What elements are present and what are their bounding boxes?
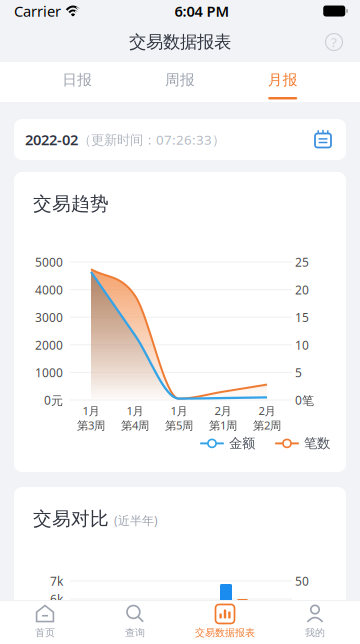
staticText: 2月	[214, 403, 231, 418]
staticText: 0笔	[295, 392, 314, 408]
staticText: 6:04 PM	[174, 1, 229, 21]
staticText: 4k	[50, 627, 63, 643]
staticText: 2022-02	[25, 129, 78, 149]
staticText: 月报	[268, 70, 298, 89]
button[interactable]: 月报	[231, 62, 334, 102]
staticText: （更新时间：07:26:33）	[78, 130, 225, 149]
staticText: 5	[295, 364, 302, 381]
staticText: 交易数据报表	[129, 31, 231, 53]
staticText: 5000	[35, 254, 63, 270]
staticText: 我的	[305, 626, 325, 639]
button[interactable]: 周报	[129, 62, 231, 102]
button[interactable]: 查询	[90, 600, 180, 644]
staticText: 第3周	[77, 417, 105, 433]
staticText: 首页	[35, 626, 55, 639]
staticText: 2000	[35, 337, 63, 353]
staticText: 30	[295, 623, 309, 640]
staticText: 40	[295, 598, 309, 614]
staticText: 15	[295, 309, 309, 325]
staticText: ?	[331, 33, 337, 51]
button[interactable]: 首页	[0, 600, 90, 644]
staticText: 1月	[126, 403, 143, 418]
button[interactable]: 2022-02	[14, 119, 346, 160]
staticText: 4000	[35, 282, 63, 298]
staticText: 1月	[170, 403, 187, 418]
staticText: 3000	[35, 309, 63, 325]
staticText: 查询	[125, 626, 145, 639]
staticText: 2月	[258, 403, 275, 418]
staticText: 20	[295, 282, 309, 298]
staticText: 交易数据报表	[195, 626, 255, 639]
button[interactable]: 交易数据报表	[180, 600, 270, 644]
staticText: 7k	[50, 573, 63, 589]
staticText: 第4周	[121, 417, 149, 433]
staticText: 周报	[165, 70, 195, 89]
staticText: 日报	[62, 70, 92, 89]
staticText: 50	[295, 573, 309, 589]
staticText: 25	[295, 254, 309, 270]
staticText: 6k	[50, 591, 63, 607]
button[interactable]: Help	[320, 28, 348, 56]
staticText: 1月	[82, 403, 99, 418]
staticText: 金额	[229, 435, 255, 452]
staticText: Carrier	[14, 1, 61, 21]
staticText: 0元	[44, 392, 63, 408]
staticText: 1000	[35, 364, 63, 381]
staticText: 10	[295, 337, 309, 353]
staticText: 第2周	[253, 417, 281, 433]
staticText: 5k	[50, 609, 63, 625]
staticText: (近半年)	[114, 512, 158, 528]
staticText: 第5周	[165, 417, 193, 433]
staticText: 笔数	[304, 435, 330, 452]
staticText: 交易对比	[33, 507, 109, 530]
staticText: 第1周	[209, 417, 237, 433]
staticText: 交易趋势	[33, 192, 109, 215]
button[interactable]: 日报	[26, 62, 129, 102]
button[interactable]: 我的	[270, 600, 360, 644]
